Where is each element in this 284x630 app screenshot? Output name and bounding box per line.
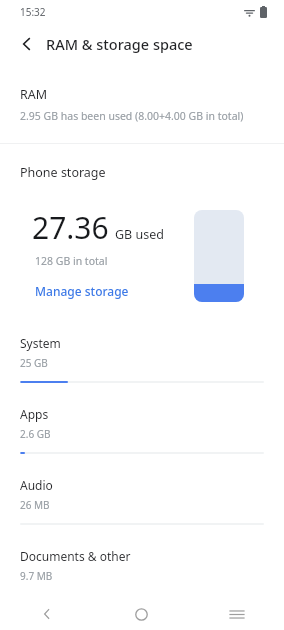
button[interactable]: RAM (0, 86, 284, 123)
staticText: 27.36 (32, 207, 109, 248)
staticText: Phone storage (20, 164, 106, 181)
staticText: 25 GB (20, 356, 48, 370)
staticText: 15:32 (20, 5, 46, 19)
staticText: RAM (20, 86, 48, 103)
staticText: RAM & storage space (46, 34, 193, 54)
staticText: Documents & other (20, 548, 131, 564)
staticText: 26 MB (20, 498, 50, 512)
staticText: System (20, 335, 61, 351)
staticText: 9.7 MB (20, 569, 53, 583)
button[interactable]: Documents & other (0, 548, 284, 583)
staticText: GB used (115, 226, 164, 243)
staticText: Apps (20, 406, 49, 422)
staticText: Audio (20, 477, 53, 493)
button[interactable]: Apps (0, 406, 284, 477)
button[interactable]: Back (0, 598, 94, 630)
button[interactable]: Back (12, 29, 42, 59)
button[interactable]: Recent apps (189, 598, 284, 630)
staticText: Manage storage (35, 283, 129, 299)
button[interactable]: Home (94, 598, 189, 630)
button[interactable]: Audio (0, 477, 284, 548)
staticText: 128 GB in total (35, 254, 108, 268)
staticText: 2.95 GB has been used (8.00+4.00 GB in t… (20, 109, 244, 123)
button[interactable]: System (0, 335, 284, 406)
staticText: 2.6 GB (20, 427, 51, 441)
button[interactable]: Manage storage (32, 282, 132, 300)
